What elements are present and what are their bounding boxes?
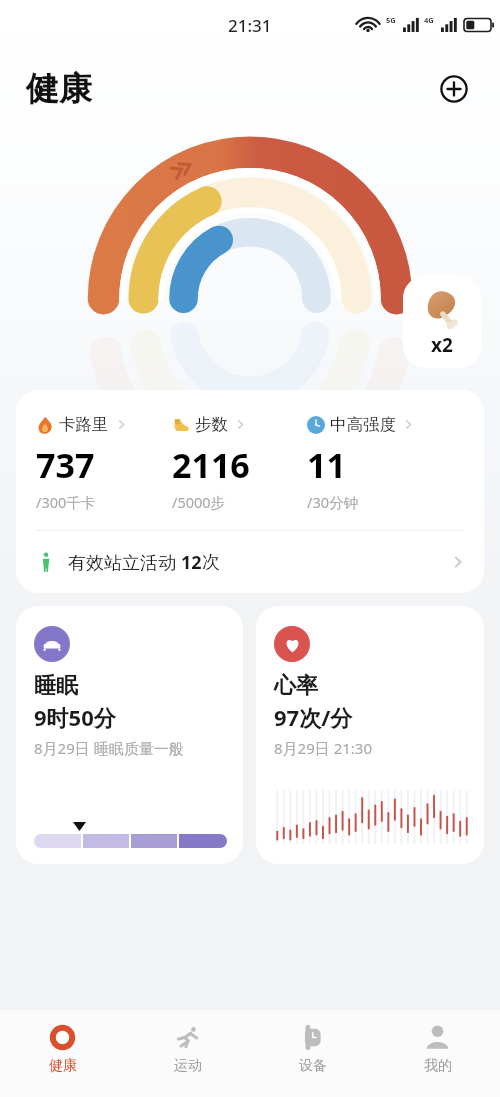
button[interactable]: 我的 (375, 1010, 500, 1097)
staticText: 12 (181, 550, 202, 575)
button[interactable]: 卡路里 (36, 414, 172, 512)
staticText: 健康 (26, 68, 92, 110)
staticText: 卡路里 (59, 414, 109, 435)
button[interactable]: 睡眠 (16, 606, 243, 864)
button[interactable]: 有效站立活动 (16, 531, 484, 593)
staticText: 11 (307, 442, 346, 488)
button[interactable]: 设备 (250, 1010, 375, 1097)
staticText: 4G (424, 15, 434, 25)
staticText: 有效站立活动 (68, 550, 181, 575)
staticText: 737 (36, 442, 95, 488)
staticText: 中高强度 (330, 414, 396, 435)
button[interactable]: 步数 (172, 414, 307, 512)
staticText: /30分钟 (307, 492, 358, 512)
staticText: 步数 (195, 414, 228, 435)
staticText: 设备 (299, 1057, 327, 1075)
staticText: 次 (202, 551, 220, 574)
staticText: 运动 (174, 1057, 202, 1075)
button[interactable]: 心率 (256, 606, 484, 864)
button[interactable]: 运动 (125, 1010, 250, 1097)
staticText: 心率 (274, 672, 318, 700)
staticText: 8月29日 睡眠质量一般 (34, 738, 184, 758)
staticText: 21:31 (228, 14, 272, 37)
staticText: 健康 (49, 1057, 77, 1075)
staticText: x2 (431, 332, 453, 358)
staticText: 8月29日 21:30 (274, 738, 372, 758)
staticText: /5000步 (172, 492, 226, 512)
staticText: 睡眠 (34, 672, 78, 700)
staticText: 5G (386, 15, 396, 25)
staticText: 2116 (172, 442, 250, 488)
staticText: 9时50分 (34, 702, 116, 732)
button[interactable]: 健康 (0, 1010, 125, 1097)
button[interactable]: 中高强度 (307, 414, 470, 512)
staticText: 我的 (424, 1057, 452, 1075)
button[interactable]: Reward x2 (403, 276, 481, 368)
staticText: /300千卡 (36, 492, 96, 512)
button[interactable]: Add (434, 69, 474, 109)
staticText: 97次/分 (274, 702, 353, 732)
